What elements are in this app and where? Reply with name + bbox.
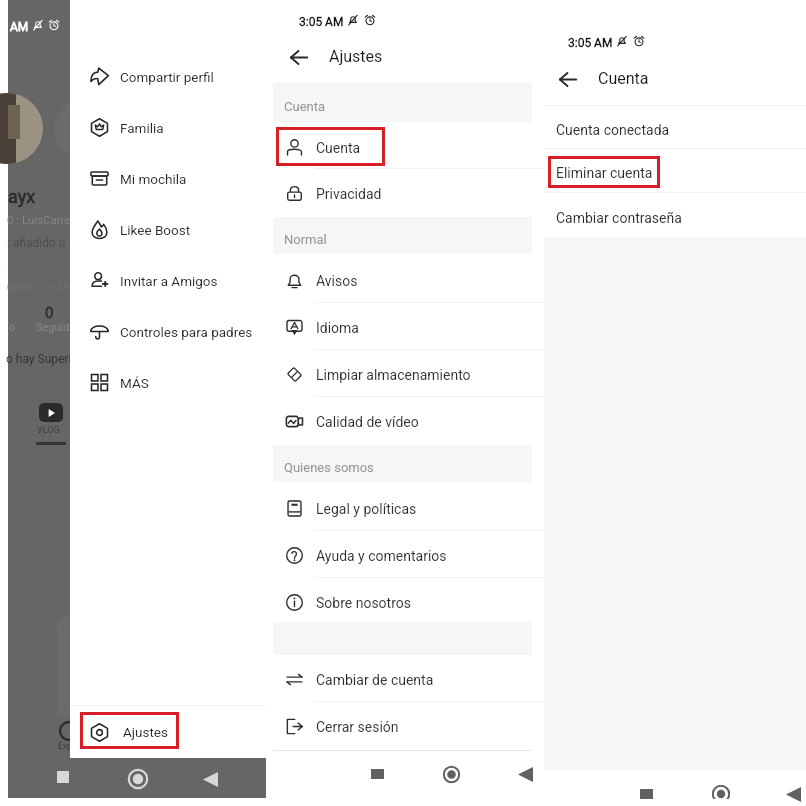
staticText: Sobre nosotros: [316, 595, 411, 611]
button[interactable]: Recents: [362, 759, 392, 789]
button[interactable]: Recents: [48, 762, 78, 792]
button[interactable]: Cuenta: [273, 124, 532, 171]
staticText: Seguid: [36, 321, 70, 334]
staticText: Cuenta: [598, 69, 649, 88]
staticText: Quienes somos: [284, 460, 374, 475]
button[interactable]: Back: [510, 759, 540, 789]
button[interactable]: Sobre nosotros: [273, 579, 532, 626]
staticText: 0 : LuisCarre: [7, 213, 71, 226]
staticText: Calidad de vídeo: [316, 414, 419, 430]
staticText: : añadido u: [7, 236, 66, 250]
staticText: o hay SuperL: [6, 352, 75, 366]
button[interactable]: Likee Boost: [70, 204, 266, 255]
staticText: + Aña: [49, 282, 75, 294]
staticText: Controles para padres: [120, 324, 253, 340]
staticText: VLOG: [37, 425, 60, 436]
button[interactable]: Calidad de vídeo: [273, 398, 532, 445]
staticText: Legal y políticas: [316, 501, 417, 517]
button[interactable]: Compartir perfil: [70, 51, 266, 102]
staticText: MÁS: [120, 375, 149, 391]
button[interactable]: Back: [778, 779, 806, 806]
staticText: Likee Boost: [120, 222, 191, 238]
button[interactable]: Cambiar contraseña: [544, 195, 806, 241]
button[interactable]: Back: [195, 764, 225, 794]
button[interactable]: Controles para padres: [70, 306, 266, 357]
button[interactable]: Ajustes: [70, 706, 266, 758]
button[interactable]: Home: [123, 764, 153, 794]
button[interactable]: Privacidad: [273, 170, 532, 217]
staticText: 3:05 AM: [568, 36, 613, 50]
staticText: o: [9, 321, 16, 334]
staticText: ..: [7, 256, 14, 270]
staticText: Idioma: [316, 320, 359, 336]
staticText: Familia: [120, 120, 164, 136]
staticText: 0km): [7, 281, 33, 294]
staticText: Explo: [58, 741, 79, 751]
button[interactable]: Ayuda y comentarios: [273, 532, 532, 579]
button[interactable]: MÁS: [70, 357, 266, 408]
staticText: Mi mochila: [120, 171, 187, 187]
staticText: Ajustes: [123, 724, 168, 740]
staticText: Limpiar almacenamiento: [316, 367, 471, 383]
button[interactable]: Back: [275, 40, 322, 87]
button[interactable]: Invitar a Amigos: [70, 255, 266, 306]
staticText: Ayuda y comentarios: [316, 548, 447, 564]
button[interactable]: Eliminar cuenta: [544, 151, 806, 195]
staticText: Cerrar sesión: [316, 719, 399, 735]
button[interactable]: Cerrar sesión: [273, 703, 532, 750]
staticText: Cuenta conectada: [556, 122, 670, 138]
button[interactable]: Home: [436, 759, 466, 789]
button[interactable]: Home: [706, 779, 736, 806]
staticText: Ajustes: [329, 47, 383, 66]
button[interactable]: Avisos: [273, 257, 532, 304]
staticText: 3:05 AM: [299, 15, 344, 29]
button[interactable]: Cuenta conectada: [544, 108, 806, 151]
staticText: Cambiar contraseña: [556, 210, 682, 226]
button[interactable]: Cambiar de cuenta: [273, 656, 532, 703]
staticText: Normal: [284, 232, 327, 247]
staticText: ayx: [8, 186, 36, 207]
button[interactable]: Back: [544, 62, 591, 109]
staticText: 0: [45, 304, 54, 322]
staticText: Compartir perfil: [120, 69, 214, 85]
staticText: Cuenta: [284, 99, 326, 114]
button[interactable]: Idioma: [273, 304, 532, 351]
button[interactable]: Mi mochila: [70, 153, 266, 204]
staticText: Avisos: [316, 273, 358, 289]
staticText: Privacidad: [316, 186, 382, 202]
staticText: Eliminar cuenta: [556, 165, 653, 181]
button[interactable]: Limpiar almacenamiento: [273, 351, 532, 398]
staticText: Cuenta: [316, 140, 361, 156]
staticText: Cambiar de cuenta: [316, 672, 434, 688]
button[interactable]: Recents: [631, 779, 661, 806]
button[interactable]: Familia: [70, 102, 266, 153]
staticText: Invitar a Amigos: [120, 273, 218, 289]
staticText: AM: [10, 20, 29, 34]
button[interactable]: Legal y políticas: [273, 485, 532, 532]
